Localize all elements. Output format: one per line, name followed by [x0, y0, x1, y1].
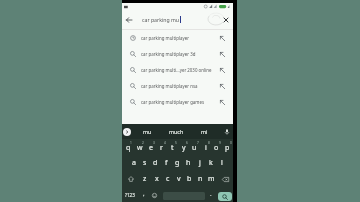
button[interactable]: Back	[123, 14, 135, 26]
staticText: p	[225, 143, 230, 153]
staticText: y	[182, 143, 186, 153]
button[interactable]: s	[139, 155, 150, 171]
staticText: mu	[143, 128, 152, 135]
button[interactable]: Clear	[220, 10, 231, 29]
button[interactable]: 4	[156, 139, 167, 155]
staticText: z	[143, 174, 147, 184]
staticText: ,	[143, 190, 145, 198]
staticText: car parking multiplayer nsa	[141, 83, 218, 89]
staticText: i	[205, 143, 207, 153]
staticText: 8	[208, 141, 210, 145]
staticText: 0	[230, 141, 232, 145]
button[interactable]: v	[173, 171, 184, 187]
button[interactable]: mu	[136, 124, 158, 139]
button[interactable]: c	[162, 171, 173, 187]
staticText: .	[210, 190, 212, 198]
button[interactable]: 6	[178, 139, 189, 155]
button[interactable]: g	[172, 155, 183, 171]
staticText: g	[175, 158, 180, 168]
button[interactable]: Backspace	[217, 171, 233, 187]
button[interactable]: Voice input	[222, 124, 231, 139]
staticText: 7	[197, 141, 199, 145]
button[interactable]: h	[183, 155, 194, 171]
staticText: 5	[175, 141, 177, 145]
staticText: l	[221, 158, 223, 168]
button[interactable]: k	[205, 155, 216, 171]
button[interactable]: .	[206, 187, 216, 202]
button[interactable]: 9	[211, 139, 222, 155]
staticText: much	[169, 128, 184, 135]
button[interactable]: car parking multiplayer games	[122, 94, 233, 110]
button[interactable]: n	[195, 171, 206, 187]
button[interactable]: j	[194, 155, 205, 171]
staticText: t	[171, 143, 174, 153]
button[interactable]: 0	[222, 139, 233, 155]
staticText: car parking mu	[142, 16, 180, 23]
staticText: c	[166, 174, 170, 184]
staticText: car parking multiplayer	[141, 35, 218, 41]
staticText: car parking multi…yer 2030 online	[141, 67, 218, 73]
button[interactable]: d	[150, 155, 161, 171]
button[interactable]: 3	[145, 139, 156, 155]
staticText: 6	[186, 141, 188, 145]
staticText: r	[160, 143, 163, 153]
button[interactable]: mi	[193, 124, 215, 139]
button[interactable]: car parking multiplayer	[122, 30, 233, 46]
staticText: u	[192, 143, 197, 153]
button[interactable]: Shift	[122, 171, 139, 187]
staticText: 2	[142, 141, 144, 145]
staticText: mi	[201, 128, 208, 135]
staticText: ?123	[125, 192, 135, 198]
staticText: e	[149, 143, 153, 153]
button[interactable]: ,	[138, 187, 149, 202]
button[interactable]: z	[139, 171, 151, 187]
button[interactable]: 2	[134, 139, 145, 155]
button[interactable]: 5	[167, 139, 178, 155]
staticText: h	[186, 158, 191, 168]
staticText: m	[208, 174, 215, 184]
button[interactable]: b	[184, 171, 195, 187]
button[interactable]: Search	[218, 192, 232, 201]
staticText: car parking multiplayer 3d	[141, 51, 218, 57]
staticText: d	[153, 158, 158, 168]
button[interactable]: l	[216, 155, 227, 171]
button[interactable]: car parking multiplayer nsa	[122, 78, 233, 94]
staticText: w	[137, 143, 143, 153]
button[interactable]: 7	[189, 139, 200, 155]
staticText: q	[126, 143, 131, 153]
staticText: b	[187, 174, 192, 184]
button[interactable]: 8	[200, 139, 211, 155]
button[interactable]: x	[151, 171, 162, 187]
button[interactable]: Emoji	[149, 187, 160, 202]
button[interactable]: ?123	[124, 187, 136, 202]
staticText: n	[198, 174, 203, 184]
button[interactable]: f	[161, 155, 172, 171]
staticText: j	[199, 158, 201, 168]
staticText: f	[165, 158, 168, 168]
button[interactable]: 1	[122, 139, 134, 155]
staticText: 3	[153, 141, 155, 145]
staticText: x	[155, 174, 159, 184]
staticText: 9	[219, 141, 221, 145]
staticText: 4	[164, 141, 166, 145]
staticText: 1	[130, 141, 132, 145]
staticText: k	[209, 158, 213, 168]
button[interactable]: More suggestions	[123, 128, 131, 136]
button[interactable]: m	[206, 171, 217, 187]
staticText: s	[143, 158, 147, 168]
button[interactable]: car parking multi…yer 2030 online	[122, 62, 233, 78]
button[interactable]: car parking multiplayer 3d	[122, 46, 233, 62]
staticText: v	[177, 174, 181, 184]
staticText: car parking multiplayer games	[141, 99, 218, 105]
button[interactable]: much	[165, 124, 187, 139]
button[interactable]: a	[128, 155, 139, 171]
staticText: o	[214, 143, 219, 153]
staticText: a	[132, 158, 136, 168]
